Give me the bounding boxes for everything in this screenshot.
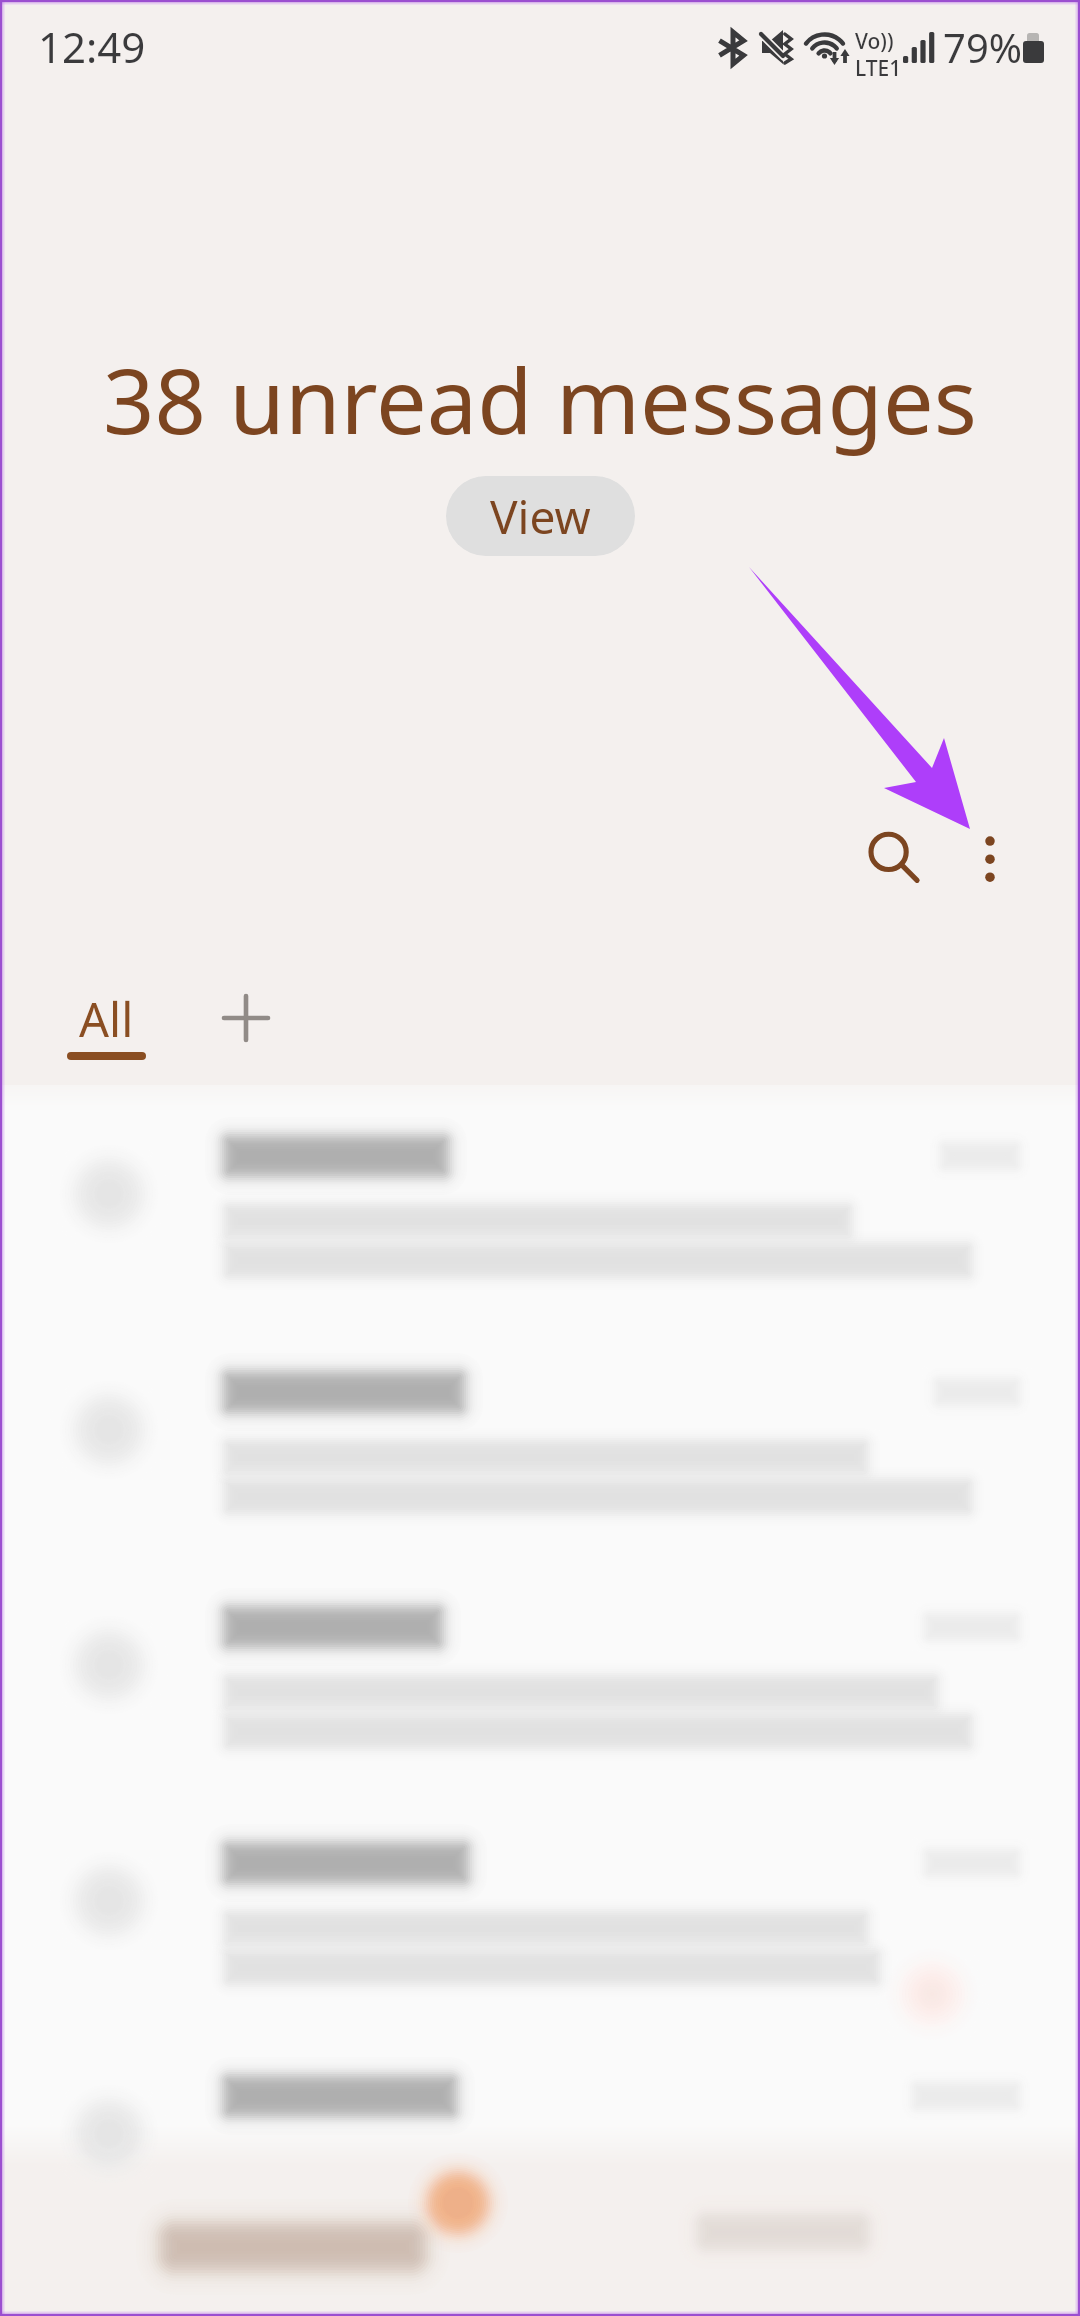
button[interactable]: Conversation 5 bbox=[0, 2047, 1080, 2283]
staticText: 79% bbox=[943, 20, 1022, 74]
button[interactable]: Contacts bbox=[640, 2167, 930, 2299]
button[interactable]: Conversation 3 bbox=[0, 1575, 1080, 1811]
button[interactable]: All bbox=[67, 987, 146, 1060]
staticText: LTE1 bbox=[855, 54, 902, 83]
button[interactable]: Conversation 1 bbox=[0, 1103, 1080, 1339]
button[interactable]: Chats bbox=[130, 2167, 510, 2299]
staticText: View bbox=[490, 485, 591, 548]
staticText: 38 unread messages bbox=[103, 338, 977, 461]
button[interactable]: More options bbox=[938, 805, 1042, 909]
button[interactable]: Conversation 2 bbox=[0, 1339, 1080, 1575]
button[interactable]: Add tab bbox=[206, 978, 286, 1058]
staticText: Vo)) bbox=[855, 27, 894, 56]
button[interactable]: Conversation 4 bbox=[0, 1811, 1080, 2047]
button[interactable]: View bbox=[446, 476, 635, 556]
staticText: 12:49 bbox=[38, 18, 146, 75]
button[interactable]: Search bbox=[843, 805, 947, 909]
staticText: All bbox=[79, 987, 134, 1051]
